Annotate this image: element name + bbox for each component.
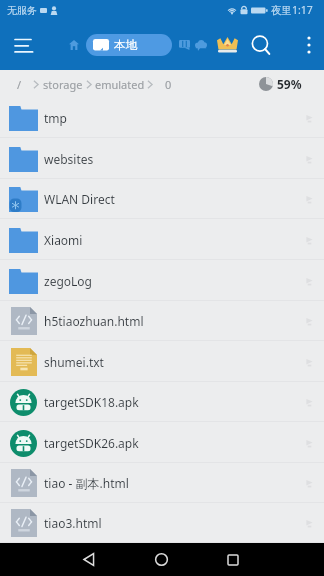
staticText: targetSDK18.apk (44, 394, 139, 410)
staticText: 无服务 (7, 4, 37, 17)
staticText: 59% (277, 76, 302, 92)
staticText: zegoLog (44, 273, 92, 289)
button[interactable]: targetSDK26.apk (0, 422, 324, 463)
staticText: WLAN Direct (44, 191, 115, 207)
staticText: targetSDK26.apk (44, 435, 139, 451)
button[interactable]: / (17, 77, 22, 92)
staticText: tmp (44, 110, 67, 126)
button[interactable]: WLAN Direct (0, 179, 324, 219)
button[interactable]: Cloud storage (190, 23, 212, 67)
button[interactable]: tiao - 副本.html (0, 463, 324, 503)
button[interactable]: tiao3.html (0, 503, 324, 543)
button[interactable]: Open navigation menu (8, 20, 40, 70)
button[interactable]: Remote (173, 23, 195, 67)
button[interactable]: Recent apps (210, 543, 256, 576)
button[interactable]: shumei.txt (0, 341, 324, 382)
staticText: Xiaomi (44, 232, 83, 248)
staticText: 本地 (114, 38, 137, 52)
staticText: 夜里1:17 (271, 3, 313, 17)
button[interactable]: emulated (95, 77, 145, 92)
staticText: websites (44, 151, 94, 167)
button[interactable]: targetSDK18.apk (0, 382, 324, 422)
button[interactable]: Home (138, 543, 184, 576)
button[interactable]: 0 (165, 77, 172, 92)
button[interactable]: Back (66, 543, 112, 576)
button[interactable]: storage (43, 77, 83, 92)
button[interactable]: h5tiaozhuan.html (0, 301, 324, 341)
button[interactable]: Home (62, 23, 86, 67)
button[interactable]: More options (294, 20, 324, 70)
staticText: tiao3.html (44, 515, 102, 531)
staticText: shumei.txt (44, 354, 104, 370)
button[interactable]: websites (0, 138, 324, 179)
button[interactable]: Premium (213, 23, 241, 67)
staticText: tiao - 副本.html (44, 475, 129, 491)
button[interactable]: zegoLog (0, 260, 324, 301)
button[interactable]: 59% (257, 70, 302, 98)
button[interactable]: 本地 (86, 34, 172, 56)
button[interactable]: tmp (0, 98, 324, 138)
button[interactable]: Search (246, 22, 276, 68)
button[interactable]: Xiaomi (0, 219, 324, 260)
staticText: h5tiaozhuan.html (44, 313, 144, 329)
